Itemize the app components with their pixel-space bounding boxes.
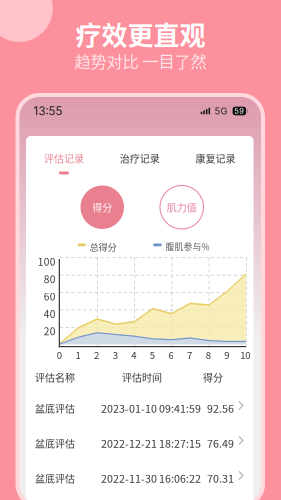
staticText: 2	[94, 348, 99, 362]
staticText: 80	[44, 271, 56, 286]
staticText: 腹肌参与%	[165, 240, 209, 253]
button[interactable]: 治疗记录	[102, 149, 178, 176]
staticText: 2022-12-21 18:27:15	[101, 435, 201, 451]
staticText: 评估名称	[35, 370, 75, 384]
button[interactable]: 盆底评估	[26, 388, 253, 423]
staticText: 20	[44, 324, 56, 338]
staticText: 治疗记录	[120, 151, 160, 165]
staticText: 盆底评估	[35, 401, 75, 415]
staticText: 趋势对比 一目了然	[74, 49, 206, 73]
staticText: 7	[187, 348, 192, 362]
staticText: 100	[38, 254, 56, 269]
staticText: 5G	[215, 105, 228, 117]
staticText: 0	[57, 348, 62, 362]
staticText: 4	[131, 348, 136, 362]
staticText: 康复记录	[196, 151, 236, 165]
staticText: 60	[44, 289, 56, 303]
staticText: 5	[150, 348, 155, 362]
staticText: 评估记录	[44, 151, 84, 165]
button[interactable]: 评估记录	[26, 149, 102, 176]
button[interactable]: 盆底评估	[26, 458, 253, 493]
staticText: 8	[206, 348, 211, 362]
staticText: 10	[240, 348, 250, 362]
staticText: 疗效更直观	[75, 15, 205, 53]
staticText: 得分	[92, 200, 112, 214]
staticText: 2023-01-10 09:41:59	[101, 400, 201, 416]
staticText: 盆底评估	[35, 436, 75, 450]
staticText: 2022-11-30 16:06:22	[101, 470, 201, 486]
staticText: 肌力值	[167, 200, 197, 214]
staticText: 总得分	[90, 240, 117, 253]
staticText: 1	[75, 348, 80, 362]
staticText: 59	[234, 106, 244, 115]
staticText: 6	[168, 348, 173, 362]
staticText: 70.31	[207, 470, 234, 486]
button[interactable]: 盆底评估	[26, 423, 253, 458]
staticText: 盆底评估	[35, 471, 75, 485]
staticText: 得分	[203, 370, 223, 384]
staticText: 92.56	[207, 400, 234, 416]
staticText: 13:55	[33, 104, 62, 118]
staticText: 40	[44, 306, 56, 321]
staticText: 评估时间	[122, 370, 162, 384]
staticText: 9	[224, 348, 229, 362]
staticText: 3	[113, 348, 118, 362]
staticText: 76.49	[207, 435, 234, 451]
button[interactable]: 康复记录	[178, 149, 253, 176]
